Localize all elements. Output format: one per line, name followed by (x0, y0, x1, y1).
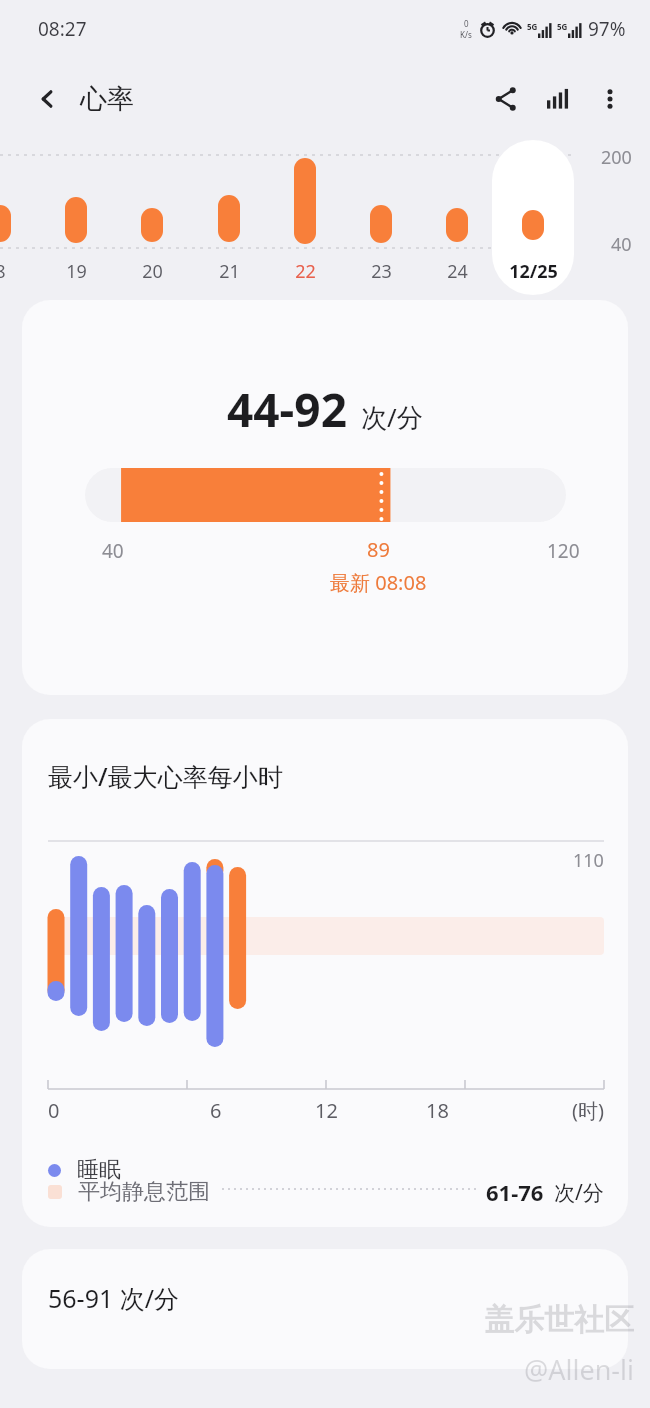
staticText: 40 (611, 232, 632, 257)
staticText: 次/分 (361, 399, 423, 435)
staticText: 61-76 (486, 1177, 544, 1207)
staticText: 200 (601, 145, 632, 170)
staticText: 心率 (80, 82, 134, 116)
staticText: 平均静息范围 (78, 1178, 210, 1206)
staticText: 19 (66, 259, 87, 284)
staticText: 5G (557, 21, 568, 32)
staticText: 22 (295, 259, 316, 284)
button[interactable]: 56-91 次/分 (22, 1249, 628, 1369)
staticText: 盖乐世社区 (484, 1301, 634, 1339)
staticText: (时) (572, 1097, 604, 1124)
staticText: 最小/最大心率每小时 (48, 759, 283, 793)
button[interactable]: Share (480, 73, 532, 125)
staticText: 次/分 (554, 1178, 604, 1207)
staticText: 40 (102, 538, 124, 564)
staticText: 08:27 (38, 16, 87, 42)
staticText: 20 (142, 259, 163, 284)
staticText: 44-92 (227, 378, 347, 441)
staticText: @Allen-li (524, 1351, 634, 1388)
staticText: 12/25 (509, 259, 558, 284)
staticText: 最新 08:08 (330, 569, 427, 596)
button[interactable]: More options (584, 73, 636, 125)
button[interactable]: 44-92 (22, 300, 628, 695)
staticText: 97% (588, 16, 626, 42)
staticText: 0 (464, 18, 469, 29)
button[interactable]: Back (24, 75, 72, 123)
staticText: 56-91 次/分 (48, 1281, 180, 1315)
staticText: 0 (48, 1097, 60, 1124)
staticText: 110 (573, 848, 604, 873)
staticText: 8 (0, 259, 6, 284)
staticText: K/s (460, 29, 472, 40)
staticText: 6 (210, 1097, 222, 1124)
staticText: 23 (371, 259, 392, 284)
staticText: 120 (547, 538, 580, 564)
button[interactable]: Chart (532, 73, 584, 125)
button[interactable]: 最小/最大心率每小时 (22, 719, 628, 1227)
staticText: 5G (527, 21, 538, 32)
staticText: 89 (367, 536, 390, 563)
staticText: 18 (426, 1097, 449, 1124)
staticText: 12 (315, 1097, 338, 1124)
staticText: 睡眠 (77, 1156, 121, 1184)
staticText: 21 (219, 259, 240, 284)
staticText: 24 (447, 259, 468, 284)
